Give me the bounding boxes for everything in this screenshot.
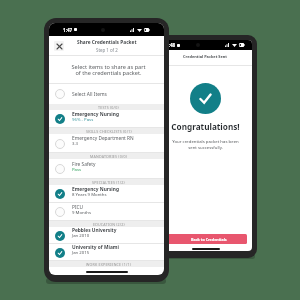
staticText: Back to Credentials <box>191 237 227 242</box>
staticText: Emergency Department RN <box>72 135 134 142</box>
staticText: SKILLS CHECKLISTS (0/1) <box>86 129 132 134</box>
staticText: Emergency Nursing <box>72 186 119 193</box>
button[interactable]: University of Miami <box>49 244 164 261</box>
button[interactable]: PICU <box>49 203 164 221</box>
staticText: 1:47 <box>63 27 73 33</box>
button[interactable]: Close <box>49 36 68 56</box>
staticText: Pass <box>72 166 82 172</box>
staticText: Your credentials packet has been sent su… <box>159 138 252 150</box>
staticText: Step 1 of 2 <box>96 47 118 53</box>
staticText: Select items to share as part of the cre… <box>51 63 164 77</box>
staticText: TESTS (0/0) <box>98 105 119 110</box>
staticText: University of Miami <box>72 244 119 251</box>
staticText: SPECIALTIES (1/2) <box>92 180 125 185</box>
staticText: Pebbles University <box>72 227 117 234</box>
staticText: 96% - Pass <box>72 116 94 122</box>
staticText: 3.3 <box>72 140 79 146</box>
staticText: MANDATORIES (0/0) <box>90 154 127 159</box>
staticText: Share Credentials Packet <box>77 39 137 46</box>
staticText: EDUCATION (2/2) <box>93 222 125 227</box>
staticText: Fire Safety <box>72 161 96 168</box>
staticText: Congratulations! <box>159 121 252 132</box>
button[interactable]: Pebbles University <box>49 227 164 244</box>
button[interactable]: Emergency Department RN <box>49 134 164 153</box>
staticText: Jan 2010 <box>72 232 90 238</box>
button[interactable]: Fire Safety <box>49 159 164 179</box>
staticText: Jan 2015 <box>72 249 90 255</box>
staticText: 8 Years 9 Months <box>72 191 107 197</box>
staticText: WORK EXPERIENCE (1/1) <box>86 262 131 267</box>
staticText: Credential Packet Sent <box>183 54 228 59</box>
button[interactable]: Emergency Nursing <box>49 185 164 203</box>
button[interactable]: Back to Credentials <box>164 234 247 244</box>
staticText: 1:48 <box>166 42 176 48</box>
staticText: PICU <box>72 204 84 211</box>
button[interactable]: Emergency Nursing <box>49 110 164 128</box>
staticText: Emergency Nursing <box>72 111 119 118</box>
staticText: 9 Months <box>72 209 91 215</box>
button[interactable]: Select All Items <box>49 84 164 104</box>
staticText: Select All Items <box>72 91 107 98</box>
